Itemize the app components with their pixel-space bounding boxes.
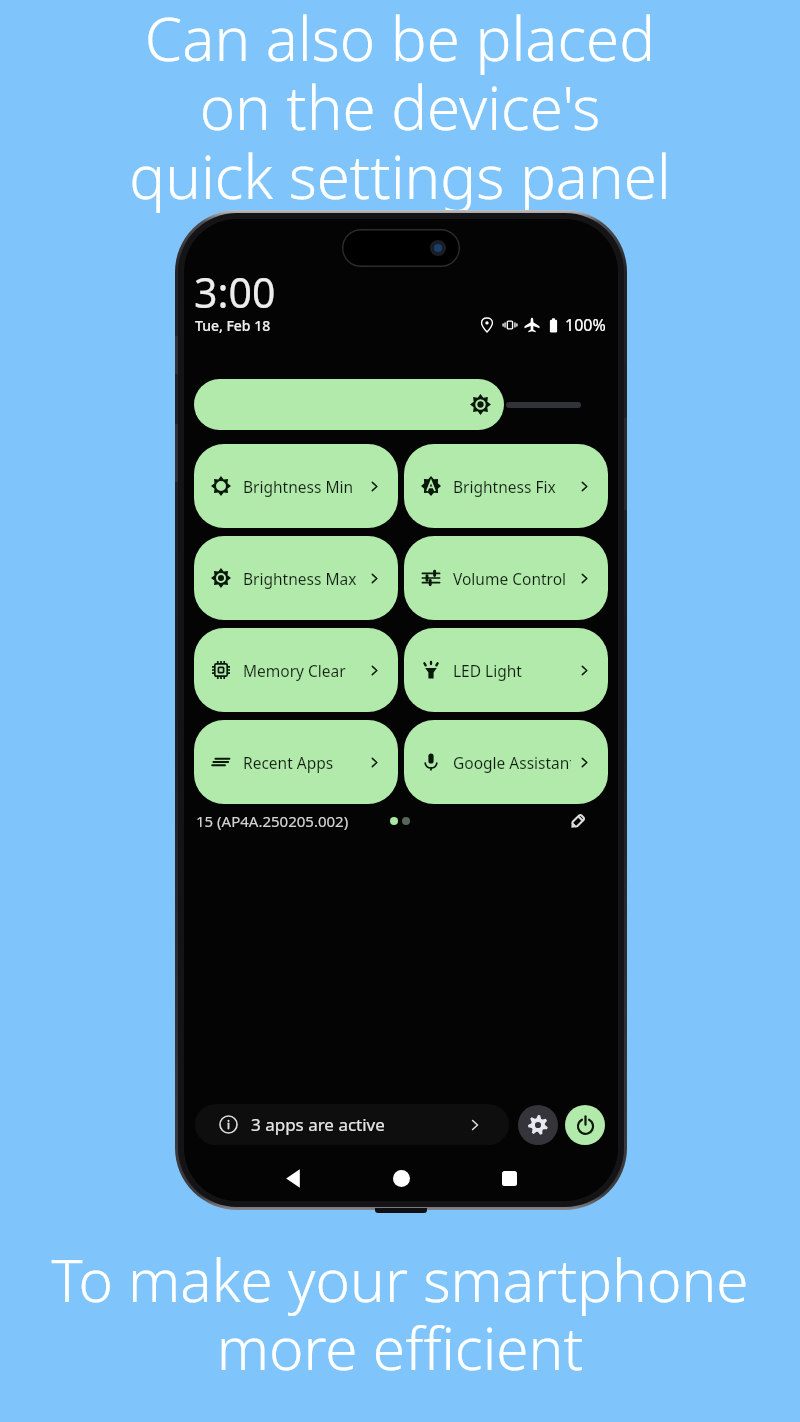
button[interactable]: Settings [518,1105,558,1145]
staticText: Tue, Feb 18 [195,316,271,335]
button[interactable]: Brightness slider [194,379,504,430]
button[interactable]: 3 apps are active [195,1104,509,1145]
button[interactable]: Recent Apps [194,720,398,804]
staticText: Can also be placed on the device's quick… [0,0,800,217]
staticText: Brightness Min [243,476,354,497]
button[interactable]: Brightness Min [194,444,398,528]
staticText: 15 (AP4A.250205.002) [196,811,349,831]
staticText: To make your smartphone more efficient [0,1239,800,1387]
button[interactable]: Home [347,1162,455,1194]
staticText: LED Light [453,660,522,681]
staticText: Brightness Fix [453,476,556,497]
button[interactable]: Google Assistant [404,720,608,804]
staticText: Recent Apps [243,752,334,773]
button[interactable]: Power [565,1105,605,1145]
button[interactable]: Recent apps [455,1162,563,1194]
staticText: Memory Clear [243,660,346,681]
button[interactable]: Edit tiles [567,811,588,832]
staticText: 3:00 [194,264,276,320]
staticText: 100% [565,314,606,336]
staticText: Volume Control [453,568,567,589]
button[interactable]: Memory Clear [194,628,398,712]
button[interactable]: Back [239,1162,347,1194]
button[interactable]: Brightness Max [194,536,398,620]
button[interactable]: Brightness Fix [404,444,608,528]
staticText: 3 apps are active [251,1113,385,1136]
staticText: Google Assistant [453,752,571,773]
button[interactable]: LED Light [404,628,608,712]
staticText: Brightness Max [243,568,357,589]
button[interactable]: Volume Control [404,536,608,620]
